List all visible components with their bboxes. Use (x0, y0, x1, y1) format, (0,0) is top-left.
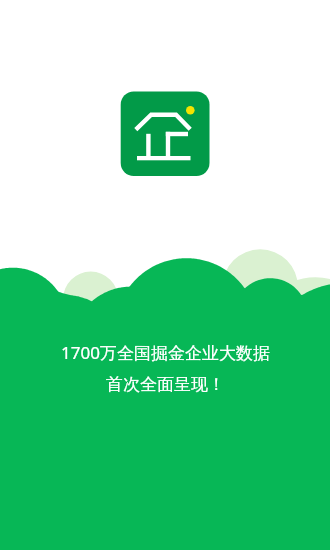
staticText: 首次全面呈现！ (106, 374, 225, 395)
staticText: 1700万全国掘金企业大数据 (61, 341, 270, 364)
